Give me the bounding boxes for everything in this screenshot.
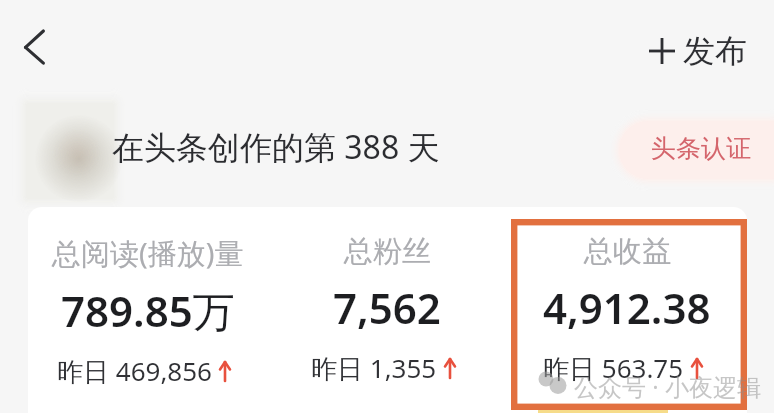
staticText: 发布 [683, 31, 747, 71]
button[interactable]: Profile avatar [10, 87, 130, 215]
staticText: 头条认证 [651, 133, 751, 164]
staticText: 昨日 563.75 [543, 350, 684, 386]
staticText: 昨日 1,355 [311, 350, 437, 386]
staticText: 总阅读(播放)量 [52, 233, 244, 273]
button[interactable]: 发布 [649, 31, 747, 71]
staticText: 总粉丝 [344, 233, 431, 270]
button[interactable]: Back [10, 23, 58, 71]
staticText: 总收益 [584, 233, 671, 270]
staticText: 在头条创作的第 388 天 [112, 125, 440, 169]
staticText: 789.85万 [61, 282, 235, 339]
staticText: 昨日 469,856 [57, 353, 212, 389]
staticText: 7,562 [333, 279, 441, 336]
staticText: 4,912.38 [543, 279, 711, 336]
button[interactable]: 头条认证 [605, 110, 774, 190]
staticText: 公众号 · 小夜逻辑 [574, 370, 761, 403]
